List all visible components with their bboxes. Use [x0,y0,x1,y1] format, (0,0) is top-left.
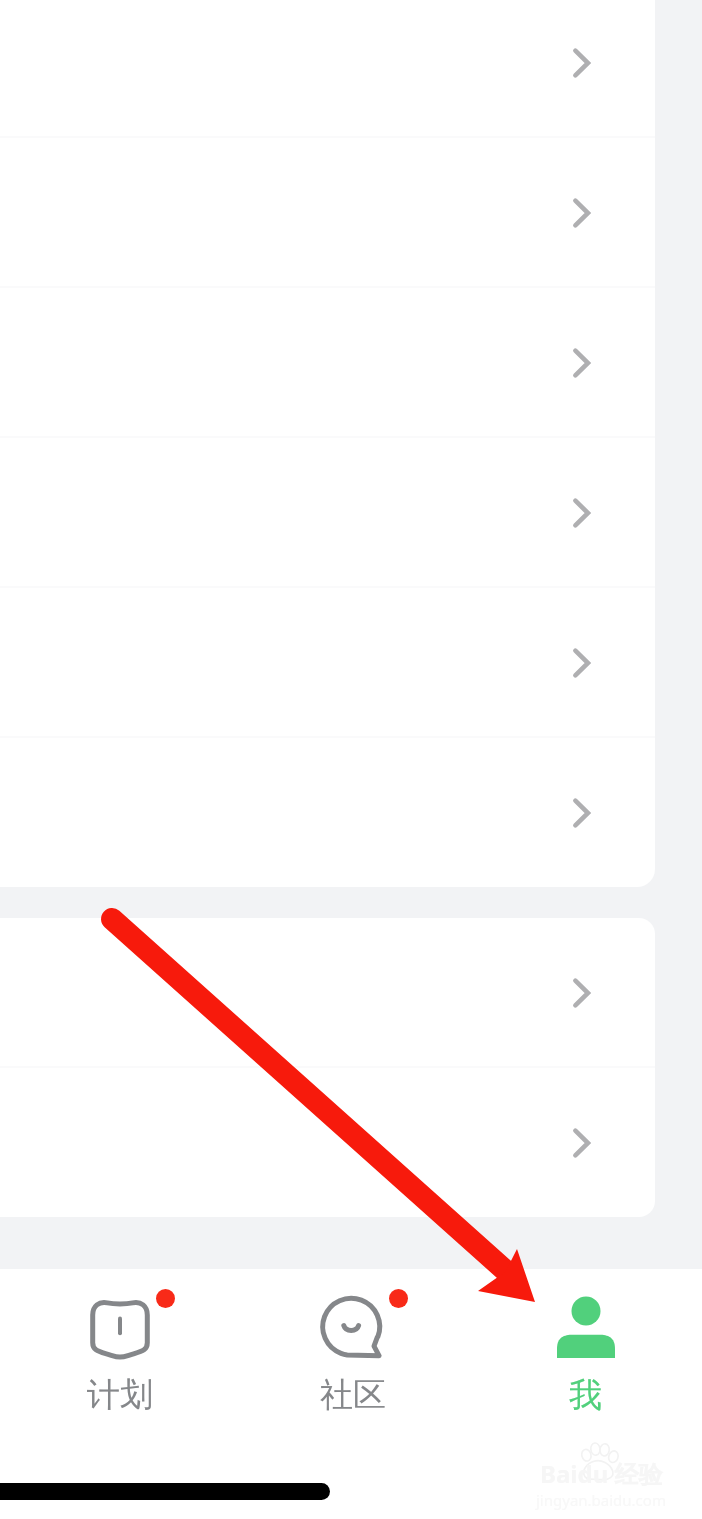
button[interactable]: 退出登录 [0,1068,655,1217]
button[interactable]: 关于我们 [0,918,655,1068]
button[interactable]: 计划 [4,1269,236,1416]
staticText: 我 [569,1374,602,1416]
button[interactable]: 社区 [236,1269,469,1416]
staticText: 计划 [87,1374,153,1416]
button[interactable]: 我的收藏 [0,138,655,288]
button[interactable]: 我的订单 [0,0,655,138]
button[interactable]: 我 [469,1269,702,1416]
staticText: 社区 [320,1374,386,1416]
staticText: Baidu 经验 [540,1457,663,1490]
button[interactable]: 帮助与反馈 [0,588,655,738]
button[interactable]: 我的消息 [0,288,655,438]
button[interactable]: 我的卡券 [0,438,655,588]
button[interactable]: 设置 [0,738,655,887]
